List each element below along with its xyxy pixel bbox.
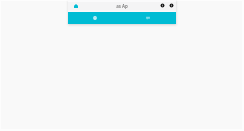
button[interactable]: Account — [167, 0, 176, 11]
button[interactable]: Messages tab — [122, 12, 176, 24]
staticText: as Ap — [116, 3, 128, 9]
button[interactable]: Home — [68, 0, 83, 12]
button[interactable]: Timer tab — [68, 12, 122, 24]
button[interactable]: Info — [158, 0, 167, 11]
